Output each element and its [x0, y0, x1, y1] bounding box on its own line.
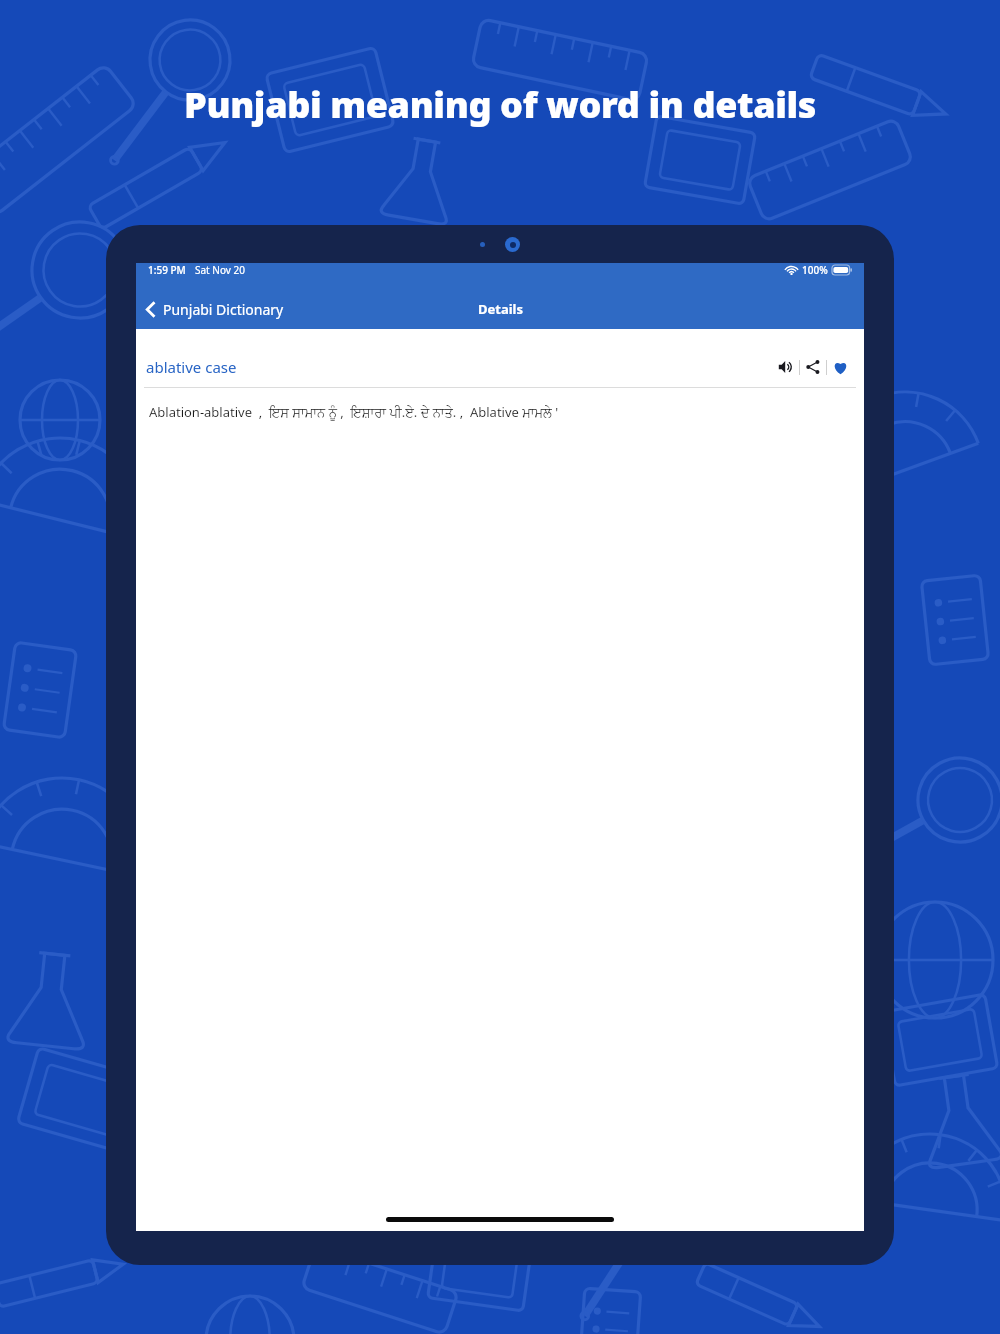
staticText: Ablation-ablative , ਇਸ ਸਾਮਾਨ ਨੂੰ , ਇਸ਼ਾਰ… [149, 403, 559, 421]
button[interactable]: Share [800, 356, 826, 378]
staticText: Punjabi Dictionary [163, 300, 284, 319]
staticText: Details [478, 300, 523, 318]
staticText: 1:59 PM [148, 263, 186, 277]
button[interactable]: Pronounce [773, 355, 799, 379]
button[interactable]: ablative case [146, 357, 237, 377]
staticText: Sat Nov 20 [195, 263, 245, 277]
button[interactable]: Punjabi Dictionary [136, 294, 294, 325]
button[interactable]: Favorite [827, 356, 854, 379]
staticText: 100% [802, 263, 828, 277]
staticText: Punjabi meaning of word in details [184, 80, 816, 129]
